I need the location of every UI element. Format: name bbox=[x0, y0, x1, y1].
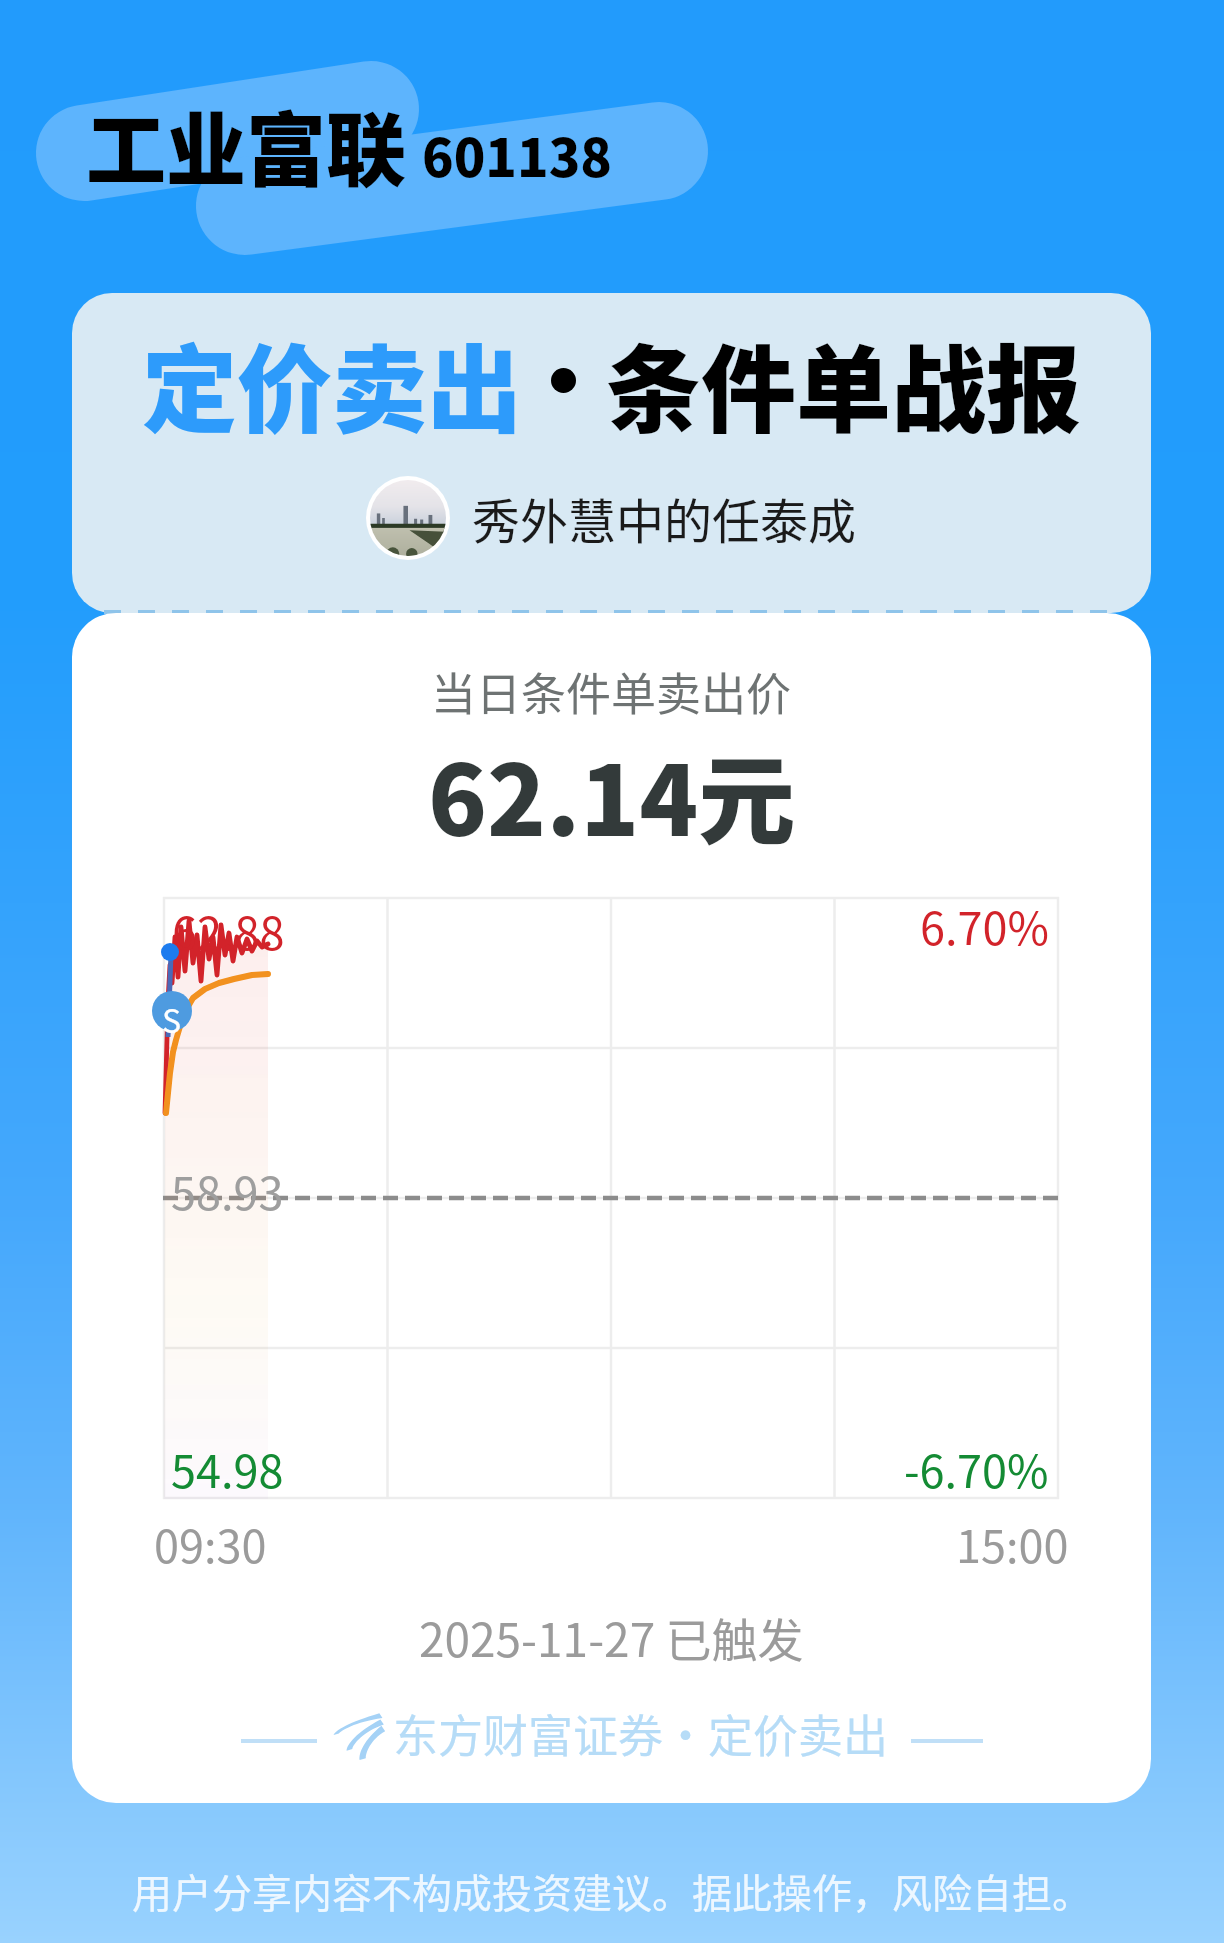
staticText: 秀外慧中的任泰成 bbox=[472, 483, 857, 553]
other: 用户头像 bbox=[366, 476, 450, 560]
button[interactable]: 用户头像 bbox=[366, 476, 857, 560]
staticText: 54.98 bbox=[171, 1436, 284, 1501]
button[interactable]: 东方财富证券·定价卖出 bbox=[72, 1701, 1151, 1766]
staticText: 用户分享内容不构成投资建议。据此操作，风险自担。 bbox=[132, 1862, 1092, 1920]
staticText: 62.14元 bbox=[428, 723, 796, 863]
staticText: 15:00 bbox=[956, 1511, 1069, 1576]
staticText: -6.70% bbox=[904, 1436, 1049, 1501]
staticText: 定价卖出 bbox=[142, 315, 523, 453]
staticText: 当日条件单卖出价 bbox=[431, 659, 792, 724]
staticText: 601138 bbox=[422, 117, 613, 192]
staticText: 东方财富证券·定价卖出 bbox=[393, 1701, 889, 1766]
staticText: S bbox=[162, 996, 182, 1042]
staticText: 58.93 bbox=[171, 1158, 284, 1223]
staticText: 条件单战报 bbox=[606, 315, 1082, 453]
staticText: 2025-11-27 已触发 bbox=[419, 1604, 804, 1671]
staticText: 09:30 bbox=[154, 1511, 267, 1576]
button[interactable]: 工业富联 bbox=[86, 86, 613, 202]
staticText: 6.70% bbox=[920, 893, 1049, 958]
staticText: 工业富联 bbox=[86, 86, 406, 202]
staticText: 62.88 bbox=[172, 898, 285, 963]
